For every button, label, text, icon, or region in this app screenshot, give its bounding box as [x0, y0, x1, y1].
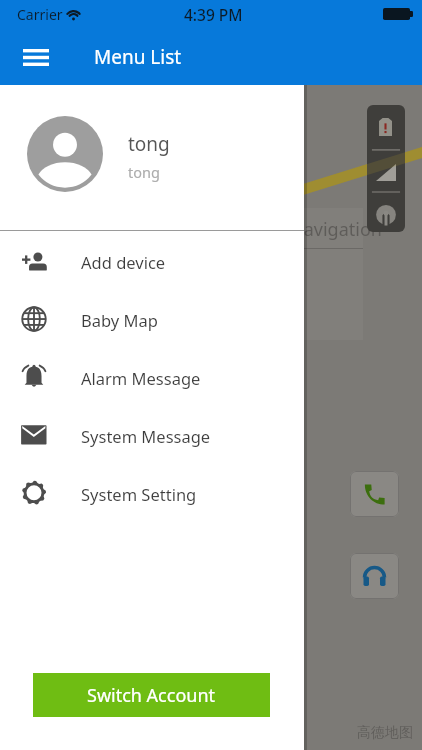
button[interactable]: Headphones: [350, 553, 399, 599]
staticText: 高德地图: [357, 724, 413, 742]
button[interactable]: System Message: [0, 407, 304, 465]
staticText: Add device: [81, 251, 166, 273]
button[interactable]: Alarm Message: [0, 349, 304, 407]
staticText: Menu List: [94, 44, 182, 70]
staticText: Navigation: [290, 217, 410, 242]
button[interactable]: Call: [350, 471, 399, 517]
button[interactable]: tong: [0, 85, 304, 230]
staticText: Switch Account: [87, 683, 216, 708]
staticText: System Message: [81, 425, 211, 447]
staticText: 4:39 PM: [184, 4, 243, 25]
button[interactable]: Add device: [0, 233, 304, 291]
button[interactable]: Switch Account: [33, 673, 270, 717]
staticText: tong: [128, 162, 160, 182]
staticText: tong: [128, 131, 170, 157]
staticText: Carrier: [17, 5, 63, 24]
staticText: System Setting: [81, 483, 197, 505]
button[interactable]: Open navigation menu: [10, 31, 62, 83]
button[interactable]: System Setting: [0, 465, 304, 523]
staticText: Alarm Message: [81, 367, 201, 389]
staticText: Baby Map: [81, 309, 158, 331]
button[interactable]: Baby Map: [0, 291, 304, 349]
